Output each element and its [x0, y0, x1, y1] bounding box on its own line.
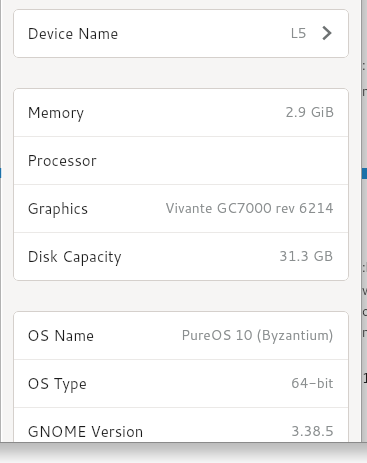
other: Open device name: [323, 25, 334, 41]
staticText: w: [362, 281, 367, 299]
staticText: 2.9 GiB: [285, 102, 334, 122]
staticText: :ly: [362, 258, 367, 276]
staticText: n: [362, 323, 367, 341]
staticText: PureOS 10 (Byzantium): [181, 325, 334, 345]
staticText: OS Name: [27, 325, 95, 346]
button[interactable]: Windowing System: [13, 456, 349, 463]
staticText: Graphics: [27, 198, 89, 219]
staticText: OS Type: [27, 373, 87, 394]
staticText: n: [362, 82, 367, 100]
staticText: GNOME Version: [27, 421, 144, 442]
button[interactable]: GNOME Version: [13, 408, 349, 456]
button[interactable]: Processor: [13, 137, 349, 185]
button[interactable]: Disk Capacity: [13, 233, 349, 281]
staticText: 31.3 GB: [279, 246, 334, 266]
button[interactable]: Memory: [13, 89, 349, 137]
staticText: :P: [362, 56, 367, 74]
staticText: X11: [307, 455, 334, 462]
staticText: Disk Capacity: [27, 246, 122, 267]
staticText: 3.38.5: [291, 421, 334, 441]
staticText: Windowing System: [27, 455, 163, 462]
button[interactable]: Device Name: [13, 10, 349, 58]
staticText: Vivante GC7000 rev 6214: [165, 198, 334, 218]
staticText: L5: [290, 23, 307, 43]
button[interactable]: Graphics: [13, 185, 349, 233]
staticText: Device Name: [27, 23, 119, 44]
staticText: 1a: [362, 369, 367, 387]
staticText: Processor: [27, 150, 97, 171]
staticText: 64-bit: [291, 373, 334, 393]
button[interactable]: OS Type: [13, 360, 349, 408]
staticText: Memory: [27, 102, 85, 123]
staticText: ot: [362, 302, 367, 320]
button[interactable]: OS Name: [13, 312, 349, 360]
